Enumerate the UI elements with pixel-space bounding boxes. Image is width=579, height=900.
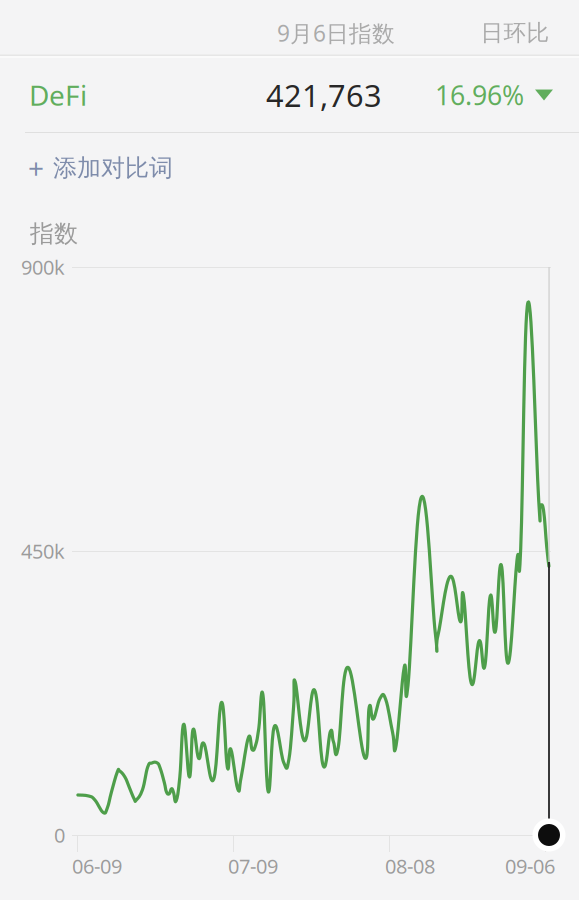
button[interactable]: DeFi — [0, 57, 579, 133]
staticText: 06-09 — [72, 853, 122, 879]
staticText: 日环比 — [480, 19, 549, 47]
staticText: DeFi — [29, 76, 87, 114]
staticText: 添加对比词 — [53, 153, 173, 183]
staticText: 421,763 — [266, 75, 382, 115]
staticText: + — [28, 149, 44, 187]
button[interactable]: + — [0, 137, 579, 199]
staticText: 16.96% — [435, 77, 524, 113]
staticText: 指数 — [30, 219, 78, 248]
staticText: 450k — [21, 538, 65, 564]
staticText: 0 — [54, 822, 65, 848]
staticText: 9月6日指数 — [277, 18, 395, 48]
staticText: 08-08 — [385, 853, 435, 879]
staticText: 09-06 — [505, 853, 555, 879]
staticText: 07-09 — [228, 853, 278, 879]
staticText: 900k — [21, 254, 65, 280]
